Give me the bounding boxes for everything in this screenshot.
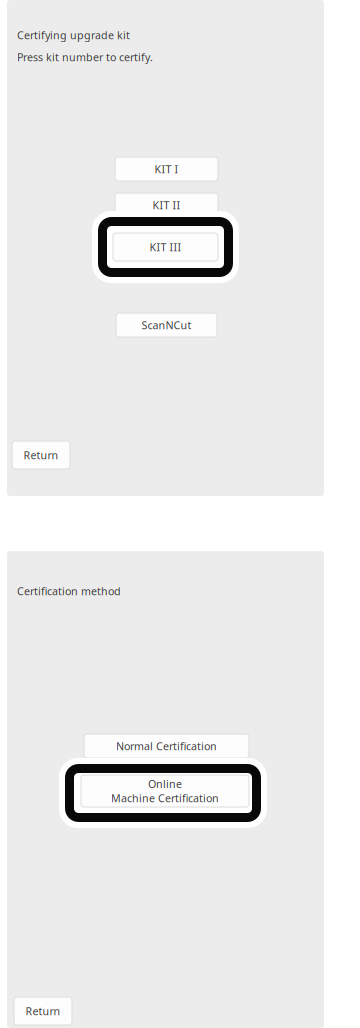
staticText: KIT III [149, 240, 181, 254]
staticText: KIT II [152, 198, 180, 212]
button[interactable]: Online [81, 775, 249, 807]
staticText: Machine Certification [111, 791, 219, 805]
staticText: Press kit number to certify. [17, 50, 153, 64]
button[interactable]: ScanNCut [116, 313, 217, 337]
staticText: Online [148, 777, 182, 791]
staticText: Return [23, 448, 58, 462]
staticText: KIT I [154, 162, 178, 176]
staticText: Normal Certification [116, 739, 217, 753]
button[interactable]: KIT III [113, 233, 218, 261]
button[interactable]: KIT II [115, 193, 218, 217]
button[interactable]: Normal Certification [84, 734, 249, 758]
button[interactable]: Return [14, 997, 72, 1025]
button[interactable]: KIT I [115, 157, 218, 181]
staticText: Return [25, 1004, 60, 1018]
button[interactable]: Return [12, 441, 70, 469]
staticText: ScanNCut [141, 318, 191, 332]
staticText: Certifying upgrade kit [17, 28, 130, 42]
staticText: Certification method [17, 584, 121, 598]
